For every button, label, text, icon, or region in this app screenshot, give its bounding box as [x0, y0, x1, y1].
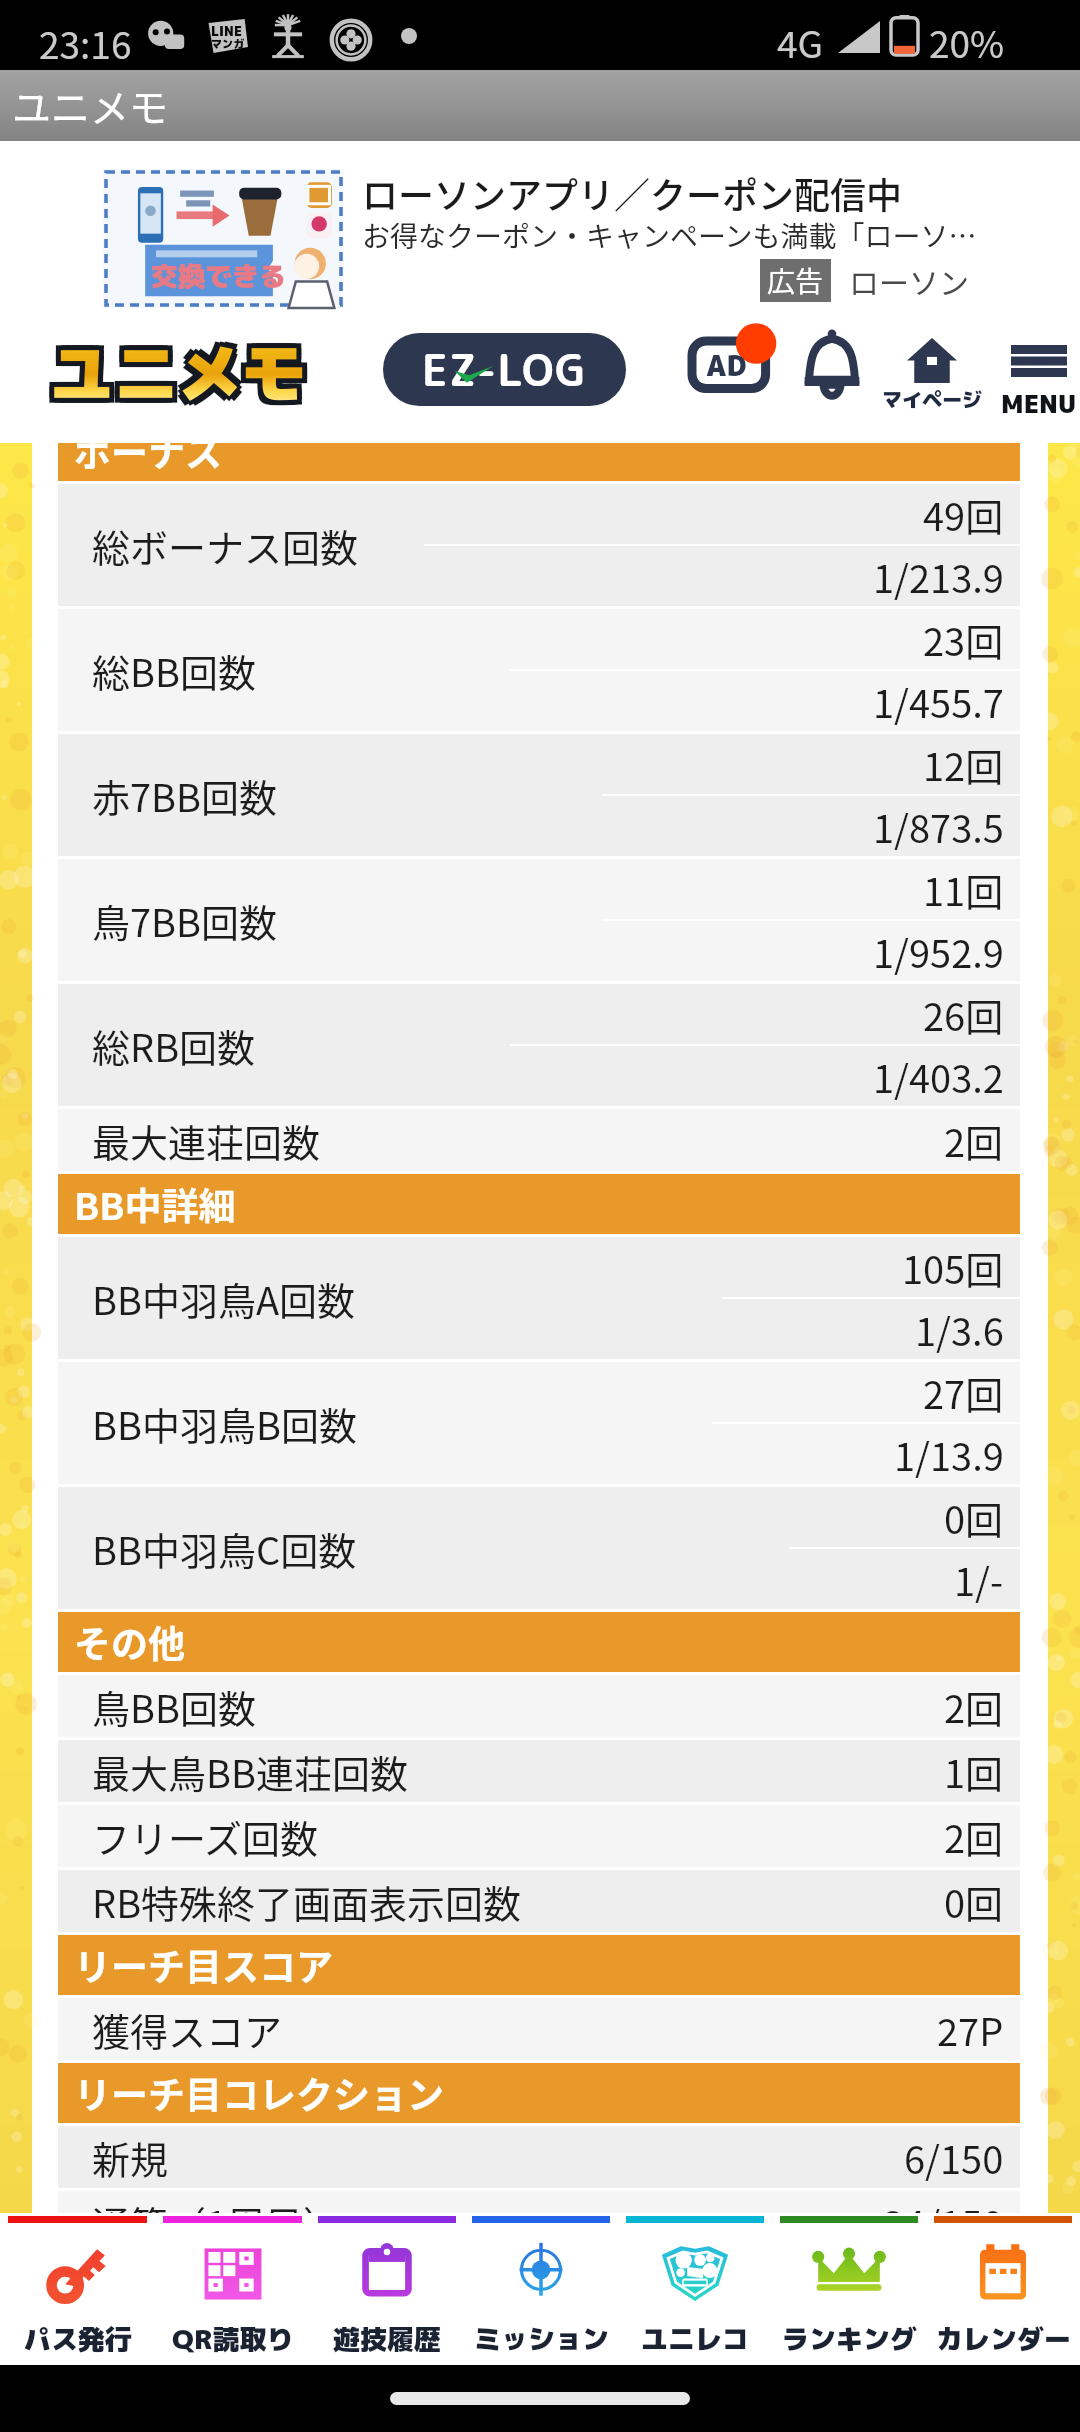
staticText: ユニレコ [641, 2320, 749, 2358]
button[interactable]: 赤7BB回数 [58, 734, 1020, 856]
button[interactable]: RB特殊終了画面表示回数 [58, 1870, 1020, 1932]
button[interactable]: 総ボーナス回数 [58, 484, 1020, 606]
staticText: RB特殊終了画面表示回数 [92, 1874, 522, 1929]
staticText: ローソン [849, 259, 969, 302]
staticText: 1/13.9 [894, 1427, 1004, 1482]
staticText: 2回 [944, 1113, 1004, 1168]
staticText: 105回 [902, 1240, 1004, 1295]
button[interactable]: 交換できる [0, 141, 1080, 311]
staticText: 20% [929, 15, 1005, 69]
staticText: 1/952.9 [873, 924, 1004, 979]
staticText: パス発行 [24, 2320, 132, 2358]
button[interactable]: 総RB回数 [58, 984, 1020, 1106]
button[interactable]: 最大連荘回数 [58, 1109, 1020, 1171]
staticText: リーチ目コレクション [74, 2066, 444, 2120]
button[interactable]: 鳥7BB回数 [58, 859, 1020, 981]
button[interactable]: 鳥BB回数 [58, 1675, 1020, 1737]
staticText: 最大連荘回数 [92, 1113, 321, 1168]
staticText: 獲得スコア [92, 2002, 283, 2057]
button[interactable]: BB中羽鳥C回数 [58, 1487, 1020, 1609]
staticText: EZ-LOG [422, 340, 587, 400]
staticText: フリーズ回数 [92, 1809, 319, 1864]
staticText: AD [706, 346, 747, 385]
staticText: BB中羽鳥C回数 [92, 1521, 357, 1576]
button[interactable]: 通算（1周目） [58, 2191, 1020, 2213]
button[interactable]: ユニメモ [22, 328, 334, 410]
staticText: BB中詳細 [74, 1177, 236, 1231]
button[interactable]: 広告 [688, 323, 780, 405]
staticText: 鳥7BB回数 [92, 893, 278, 948]
button[interactable]: フリーズ回数 [58, 1805, 1020, 1867]
staticText: 11回 [923, 862, 1004, 917]
staticText: ミッション [474, 2320, 609, 2358]
staticText: 1/873.5 [873, 799, 1004, 854]
staticText: BB中羽鳥B回数 [92, 1396, 357, 1451]
staticText: 4G [777, 15, 824, 69]
button[interactable]: 新規 [58, 2126, 1020, 2188]
button[interactable]: カレンダー [926, 2213, 1080, 2365]
staticText: 34/150 [883, 2195, 1004, 2213]
staticText: 1回 [944, 1744, 1004, 1799]
staticText: 新規 [92, 2130, 169, 2185]
staticText: 遊技履歴 [333, 2320, 441, 2358]
button[interactable]: ランキング [772, 2213, 926, 2365]
staticText: 23:16 [39, 16, 132, 70]
button[interactable]: QR読取り [155, 2213, 310, 2365]
staticText: ユニメモ [50, 333, 306, 415]
button[interactable]: BB中羽鳥A回数 [58, 1237, 1020, 1359]
staticText: 27P [937, 2002, 1004, 2057]
staticText: お得なクーポン・キャンペーンも満載「ローソ… [362, 215, 977, 256]
button[interactable]: 総BB回数 [58, 609, 1020, 731]
button[interactable]: お知らせ [796, 324, 868, 406]
staticText: 2回 [944, 1679, 1004, 1734]
staticText: ユニメモ [50, 323, 306, 405]
staticText: リーチ目スコア [74, 1938, 333, 1992]
staticText: 鳥BB回数 [92, 1679, 256, 1734]
staticText: ユニメモ [55, 333, 311, 415]
staticText: MENU [1001, 386, 1077, 421]
staticText: ユニメモ [45, 333, 301, 415]
staticText: ユニメモ [45, 328, 301, 410]
button[interactable]: マイページ [882, 338, 982, 413]
staticText: 1/213.9 [873, 549, 1004, 604]
staticText: ユニメモ [45, 323, 301, 405]
button[interactable]: MENU [1001, 345, 1077, 421]
staticText: ランキング [782, 2320, 917, 2358]
staticText: 0回 [944, 1874, 1004, 1929]
staticText: 27回 [923, 1365, 1004, 1420]
staticText: 12回 [923, 737, 1004, 792]
button[interactable]: 最大鳥BB連荘回数 [58, 1740, 1020, 1802]
staticText: ボーナス [74, 443, 222, 478]
button[interactable]: ミッション [464, 2213, 618, 2365]
staticText: LINE [211, 22, 242, 40]
button[interactable]: EZ-LOG [383, 333, 626, 406]
button[interactable]: パス発行 [0, 2213, 155, 2365]
staticText: マンガ [211, 36, 244, 51]
staticText: 2回 [944, 1809, 1004, 1864]
staticText: ユニメモ [50, 328, 306, 410]
button[interactable]: 獲得スコア [58, 1998, 1020, 2060]
button[interactable]: BB中羽鳥B回数 [58, 1362, 1020, 1484]
staticText: 1/- [954, 1552, 1004, 1607]
button[interactable]: ユニレコ [618, 2213, 772, 2365]
staticText: ローソンアプリ／クーポン配信中 [362, 167, 903, 219]
staticText: 23回 [923, 612, 1004, 667]
staticText: 1/3.6 [915, 1302, 1004, 1357]
staticText: ユニメモ [55, 328, 311, 410]
staticText: その他 [74, 1615, 185, 1669]
staticText: 総RB回数 [92, 1018, 256, 1073]
button[interactable]: 遊技履歴 [310, 2213, 464, 2365]
staticText: 6/150 [904, 2130, 1004, 2185]
staticText: 最大鳥BB連荘回数 [92, 1744, 408, 1799]
staticText: ユニメモ [55, 323, 311, 405]
staticText: 1/403.2 [873, 1049, 1004, 1104]
staticText: 赤7BB回数 [92, 768, 278, 823]
staticText: 総ボーナス回数 [92, 518, 359, 573]
staticText: 26回 [923, 987, 1004, 1042]
staticText: 通算（1周目） [92, 2195, 342, 2213]
staticText: ユニメモ [50, 328, 306, 410]
staticText: 総BB回数 [92, 643, 256, 698]
staticText: 1/455.7 [873, 674, 1004, 729]
staticText: 広告 [767, 260, 824, 301]
staticText: マイページ [882, 385, 982, 413]
